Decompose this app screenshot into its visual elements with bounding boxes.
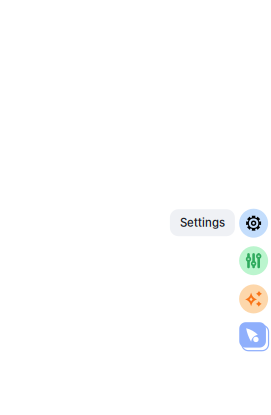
button[interactable]: Enhance — [239, 284, 268, 313]
staticText: Settings — [180, 216, 225, 229]
button[interactable]: Settings — [170, 209, 235, 236]
button[interactable]: Settings — [239, 209, 268, 238]
button[interactable]: Pointer tool — [236, 318, 270, 351]
button[interactable]: Adjust — [239, 246, 268, 275]
